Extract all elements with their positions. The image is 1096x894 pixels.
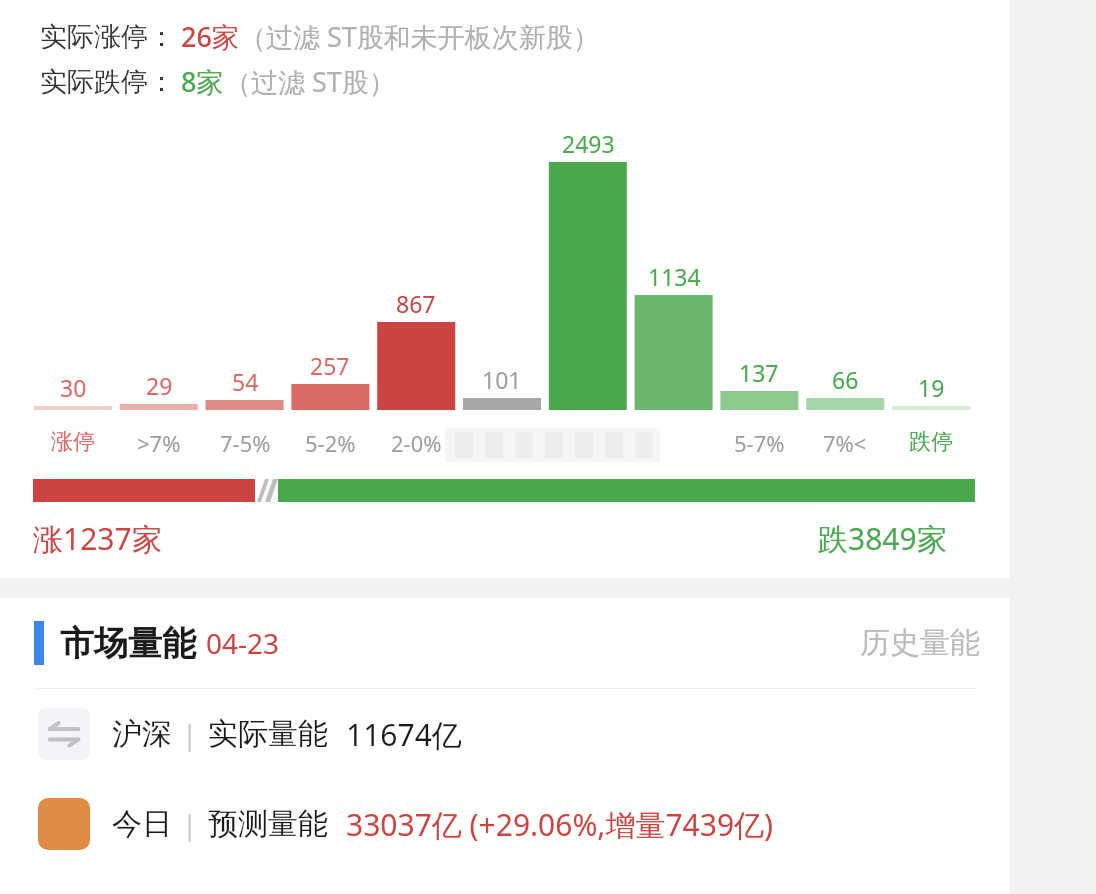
staticText: 涨1237家 [33,518,162,559]
staticText: 5-2% [305,428,356,458]
staticText: 1134 [648,261,701,292]
button[interactable]: 市场量能 [0,598,1010,688]
staticText: | [182,805,198,843]
staticText: 66 [832,364,859,395]
staticText: 26家 [181,18,239,55]
staticText: 实际跌停： [40,65,175,99]
staticText: 7-5% [220,428,271,458]
staticText: 867 [396,288,436,319]
staticText: 30 [60,372,87,403]
staticText: 5-7% [734,428,785,458]
staticText: 今日 [112,805,172,843]
staticText: 2-0% [391,428,442,458]
staticText: >7% [137,428,181,458]
staticText: 跌停 [909,428,953,456]
button[interactable]: 沪深 [0,689,1010,779]
staticText: 2493 [562,128,615,159]
staticText: 跌3849家 [818,518,947,559]
staticText: 101 [482,364,522,395]
staticText: 沪深 [112,715,172,753]
staticText: 涨停 [51,428,95,456]
staticText: 257 [310,350,350,381]
staticText: 137 [739,357,779,388]
other: 沪深 [38,708,90,760]
other: 今日 [38,798,90,850]
staticText: 7%< [823,428,867,458]
staticText: 预测量能 [208,805,328,843]
staticText: 实际量能 [208,715,328,753]
staticText: 实际涨停： [40,20,175,54]
staticText: 市场量能 [60,622,196,665]
staticText: （过滤 ST股和未开板次新股） [239,18,600,55]
staticText: 29 [146,370,173,401]
staticText: 历史量能 [860,624,980,662]
staticText: 11674亿 [346,714,462,755]
staticText: | [182,715,198,753]
staticText: 04-23 [206,624,280,662]
staticText: 19 [918,372,945,403]
staticText: 8家 [181,63,224,100]
staticText: 33037亿 (+29.06%,增量7439亿) [346,804,774,845]
staticText: 54 [232,366,259,397]
staticText: （过滤 ST股） [224,63,396,100]
button[interactable]: 今日 [0,779,1010,869]
